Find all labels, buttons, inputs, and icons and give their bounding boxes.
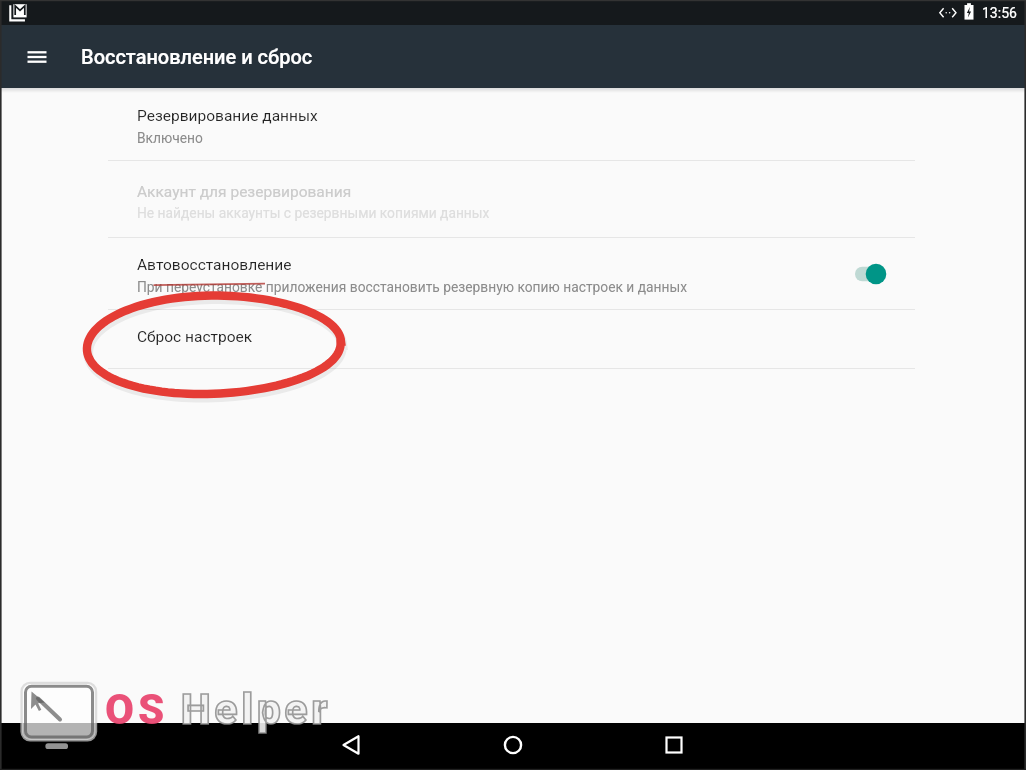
staticText: Helper	[181, 685, 332, 734]
staticText: 13:56	[982, 5, 1017, 21]
staticText: Восстановление и сброс	[81, 45, 313, 68]
button[interactable]: Open navigation menu	[13, 33, 61, 81]
button[interactable]: Аккаунт для резервирования	[0, 161, 1026, 237]
button[interactable]: Резервирование данных	[0, 88, 1026, 160]
staticText: Аккаунт для резервирования	[137, 183, 352, 201]
staticText: Автовосстановление	[137, 256, 292, 274]
staticText: При переустановке приложения восстановит…	[137, 279, 688, 295]
staticText: Не найдены аккаунты с резервными копиями…	[137, 205, 490, 221]
staticText: OS	[105, 685, 169, 734]
staticText: Включено	[137, 130, 203, 146]
staticText: Резервирование данных	[137, 107, 318, 125]
button[interactable]: Автовосстановление	[0, 238, 1026, 309]
staticText: Сброс настроек	[137, 328, 253, 346]
button[interactable]: Сброс настроек	[0, 310, 1026, 368]
button[interactable]: Recent apps	[650, 721, 698, 768]
button[interactable]: Home	[489, 721, 537, 768]
staticText: Helper	[181, 685, 332, 734]
button[interactable]: Автовосстановление, включено	[853, 261, 889, 287]
button[interactable]: Back	[327, 721, 375, 768]
